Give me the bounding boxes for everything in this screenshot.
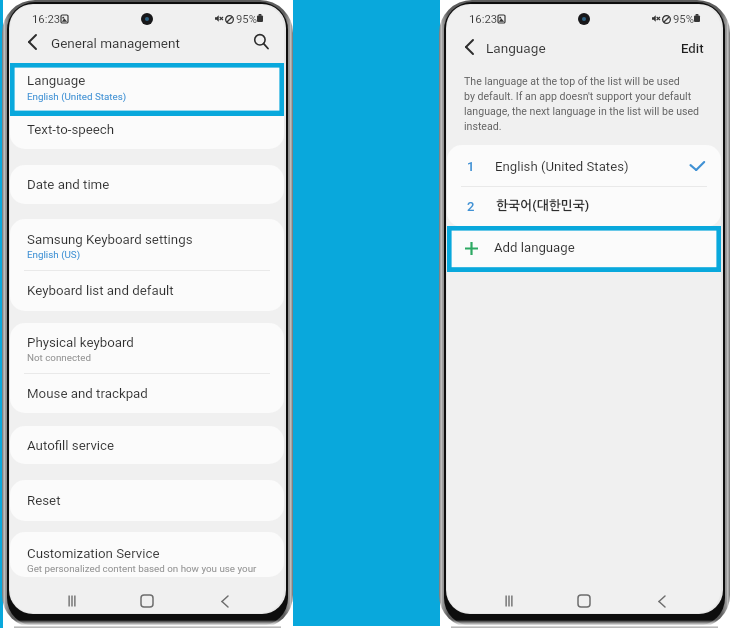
staticText: General management bbox=[51, 35, 180, 51]
button[interactable]: Home bbox=[131, 585, 163, 613]
button[interactable]: Search bbox=[248, 28, 272, 52]
button[interactable]: 2 bbox=[447, 187, 721, 227]
button[interactable]: Back bbox=[646, 585, 678, 613]
staticText: The language at the top of the list will… bbox=[464, 75, 700, 133]
staticText: Customization Service bbox=[27, 546, 160, 562]
button[interactable]: Navigate up bbox=[20, 30, 44, 54]
staticText: Edit bbox=[681, 41, 704, 56]
staticText: 2 bbox=[467, 199, 475, 214]
staticText: 1 bbox=[467, 159, 475, 174]
staticText: 한국어(대한민국) bbox=[496, 199, 590, 212]
button[interactable]: Reset bbox=[10, 480, 284, 521]
button[interactable]: Keyboard list and default bbox=[10, 271, 284, 311]
staticText: Get personalized content based on how yo… bbox=[27, 563, 257, 574]
staticText: Add language bbox=[494, 240, 575, 255]
button[interactable]: Add language bbox=[447, 226, 721, 272]
button[interactable]: Samsung Keyboard settings bbox=[10, 219, 284, 270]
staticText: Samsung Keyboard settings bbox=[27, 232, 193, 248]
staticText: 95% bbox=[673, 13, 694, 26]
button[interactable]: Physical keyboard bbox=[10, 323, 284, 373]
staticText: 95% bbox=[236, 13, 257, 26]
staticText: Text-to-speech bbox=[27, 122, 115, 138]
staticText: Autofill service bbox=[27, 438, 115, 454]
button[interactable]: Edit bbox=[677, 37, 708, 60]
button[interactable]: 1 bbox=[447, 145, 721, 186]
staticText: 16:23 bbox=[469, 13, 498, 26]
button[interactable]: Customization Service bbox=[10, 532, 284, 577]
staticText: 16:23 bbox=[32, 13, 61, 26]
staticText: Mouse and trackpad bbox=[27, 386, 148, 402]
staticText: Date and time bbox=[27, 177, 110, 193]
staticText: Not connected bbox=[27, 352, 91, 363]
button[interactable]: Language bbox=[10, 63, 284, 111]
staticText: Reset bbox=[27, 493, 61, 509]
button[interactable]: Autofill service bbox=[10, 426, 284, 464]
button[interactable]: Recent apps bbox=[493, 585, 525, 613]
staticText: English (United States) bbox=[495, 159, 629, 174]
staticText: Physical keyboard bbox=[27, 335, 134, 351]
staticText: Language bbox=[486, 40, 546, 56]
staticText: English (US) bbox=[27, 249, 81, 260]
staticText: Language bbox=[27, 73, 86, 89]
button[interactable]: Text-to-speech bbox=[10, 111, 284, 149]
button[interactable]: Home bbox=[568, 585, 600, 613]
button[interactable]: Navigate up bbox=[457, 35, 481, 59]
button[interactable]: Date and time bbox=[10, 165, 284, 204]
staticText: English (United States) bbox=[27, 91, 127, 102]
staticText: Keyboard list and default bbox=[27, 283, 174, 299]
button[interactable]: Recent apps bbox=[56, 585, 88, 613]
button[interactable]: Back bbox=[209, 585, 241, 613]
button[interactable]: Mouse and trackpad bbox=[10, 374, 284, 413]
